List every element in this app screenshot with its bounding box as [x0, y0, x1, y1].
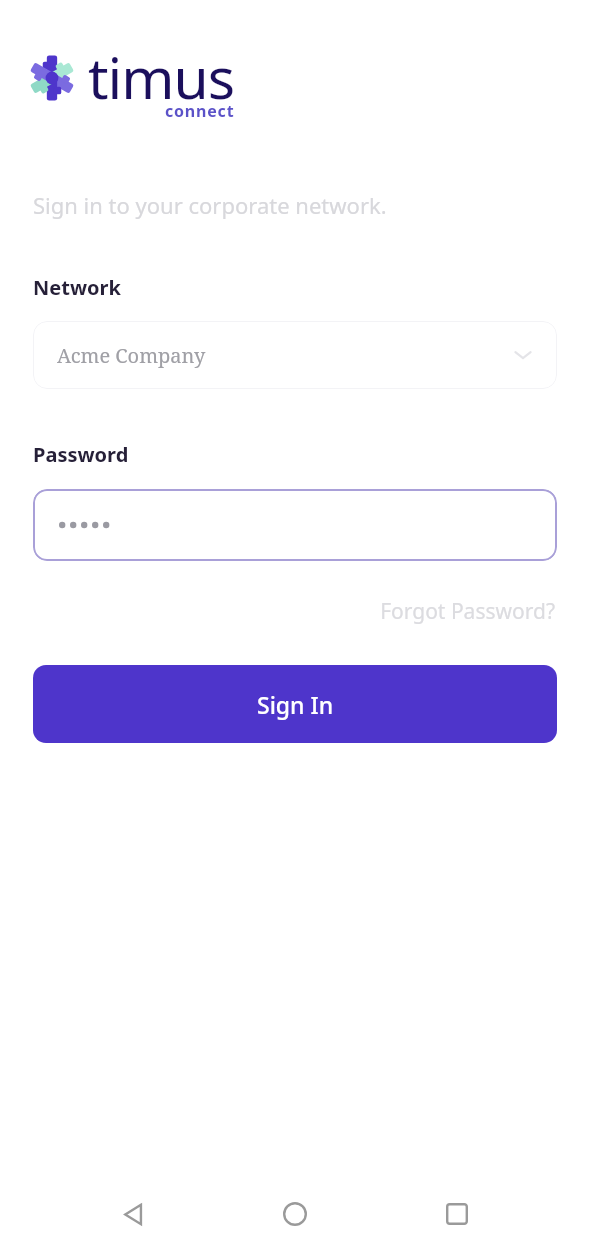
button[interactable]: Recent apps — [429, 1186, 485, 1242]
staticText: Password — [33, 441, 129, 468]
button[interactable]: Back — [106, 1186, 162, 1242]
button[interactable] — [33, 489, 557, 561]
other: Expand network list — [513, 345, 533, 365]
staticText: Network — [33, 274, 121, 301]
button[interactable]: Home — [267, 1186, 323, 1242]
button[interactable]: Acme Company — [33, 321, 557, 389]
staticText: Acme Company — [57, 342, 513, 369]
staticText: Sign In — [257, 689, 334, 720]
staticText: Sign in to your corporate network. — [33, 190, 387, 220]
staticText: connect — [165, 100, 235, 122]
staticText: timus — [88, 38, 235, 100]
button[interactable]: Forgot Password? — [378, 593, 557, 630]
button[interactable]: Sign In — [33, 665, 557, 743]
